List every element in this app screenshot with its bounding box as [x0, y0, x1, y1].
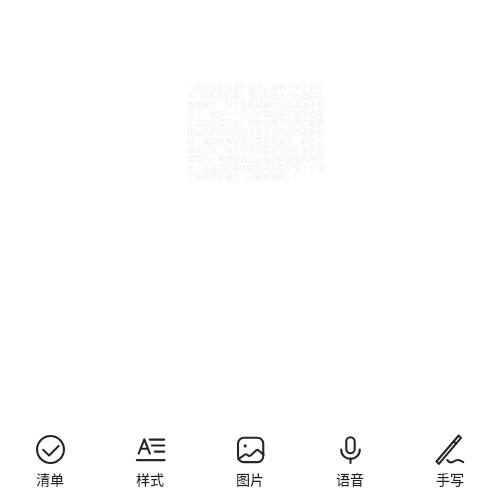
button[interactable]: Handwriting [400, 422, 500, 500]
staticText: 图片 [236, 469, 265, 489]
button[interactable]: Checklist [0, 422, 100, 500]
staticText: 语音 [336, 469, 365, 489]
staticText: 《易语言多用途》因为之前有个关于这个不小的积有些多，现在写着上下有趣的东西都删了… [187, 81, 324, 183]
staticText: 清单 [36, 469, 65, 489]
button[interactable]: Insert picture [200, 422, 300, 500]
staticText: 样式 [136, 469, 165, 489]
button[interactable]: Voice input [300, 422, 400, 500]
button[interactable]: Text style [100, 422, 200, 500]
staticText: 手写 [436, 469, 465, 489]
